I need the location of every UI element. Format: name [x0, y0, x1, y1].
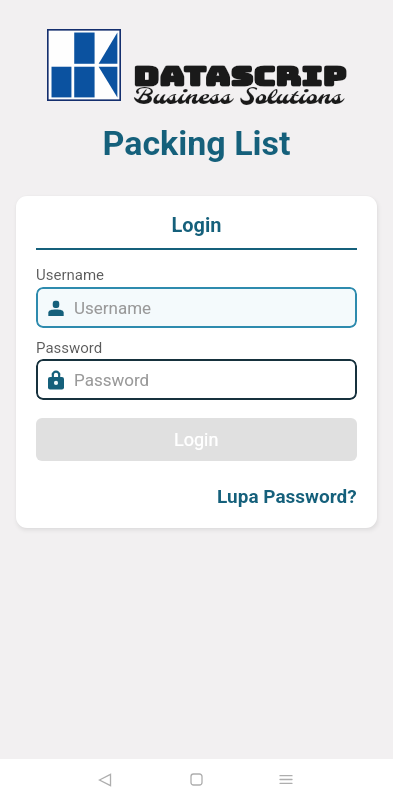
button[interactable]: Username	[36, 287, 357, 328]
staticText: Business Solutions	[133, 83, 342, 112]
staticText: Password	[74, 370, 150, 390]
staticText: Login	[174, 429, 219, 450]
button[interactable]: Password	[36, 359, 357, 400]
button[interactable]: Lupa Password?	[217, 485, 357, 507]
button[interactable]: Home	[166, 759, 226, 800]
button[interactable]: Login	[36, 418, 357, 461]
button[interactable]: Back	[75, 759, 135, 800]
staticText: Password	[36, 339, 103, 357]
staticText: Packing List	[0, 123, 393, 163]
staticText: DATASCRIP	[133, 60, 347, 93]
staticText: Username	[74, 298, 152, 318]
staticText: Login	[36, 213, 357, 236]
staticText: Username	[36, 266, 105, 284]
button[interactable]: Recent apps	[256, 759, 316, 800]
